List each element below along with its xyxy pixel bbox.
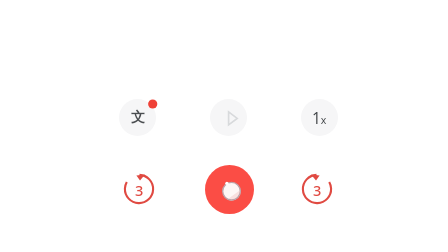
button[interactable]: Next chapter	[210, 99, 247, 136]
staticText: 3	[313, 180, 322, 200]
staticText: 文	[131, 109, 145, 127]
button[interactable]: Play	[205, 165, 254, 214]
button[interactable]: Playback speed	[301, 99, 338, 136]
staticText: 3	[135, 180, 144, 200]
button[interactable]: Replay 3 seconds	[119, 169, 159, 209]
staticText: 1x	[312, 107, 327, 128]
button[interactable]: Subtitles	[119, 99, 156, 136]
button[interactable]: Forward 3 seconds	[297, 169, 337, 209]
